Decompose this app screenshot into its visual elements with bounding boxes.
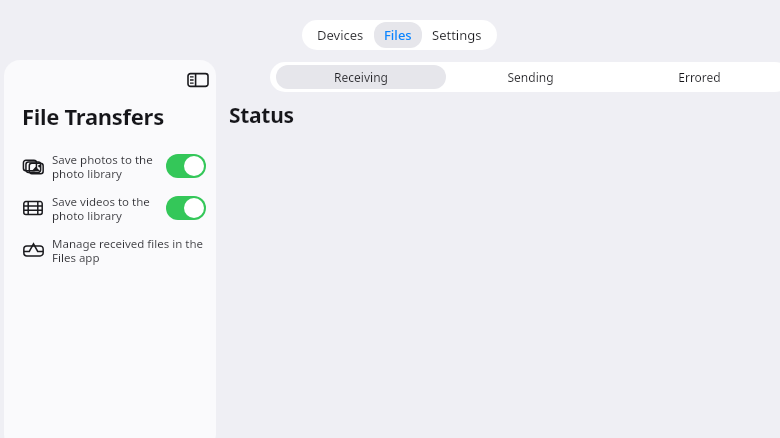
staticText: Save videos to the photo library [52, 194, 162, 223]
button[interactable]: On [166, 196, 206, 220]
staticText: File Transfers [22, 101, 164, 131]
button[interactable]: Manage received files in the Files app [4, 229, 216, 271]
button[interactable]: Toggle sidebar [182, 64, 214, 96]
button[interactable]: On [166, 154, 206, 178]
button[interactable]: Receiving [276, 65, 446, 89]
staticText: Save photos to the photo library [52, 152, 162, 181]
button[interactable]: Settings [422, 22, 492, 48]
button[interactable]: Files [374, 22, 422, 48]
button[interactable]: Sending [446, 65, 615, 89]
staticText: Manage received files in the Files app [52, 236, 206, 265]
staticText: Files [384, 26, 412, 44]
staticText: Settings [432, 26, 482, 44]
staticText: Status [229, 101, 294, 130]
staticText: Sending [507, 69, 554, 85]
button[interactable]: Save videos to the photo library [4, 187, 216, 229]
staticText: Devices [317, 26, 364, 44]
button[interactable]: Devices [307, 22, 374, 48]
button[interactable]: Errored [615, 65, 780, 89]
button[interactable]: Save photos to the photo library [4, 145, 216, 187]
staticText: Errored [678, 69, 721, 85]
staticText: Receiving [334, 69, 388, 85]
